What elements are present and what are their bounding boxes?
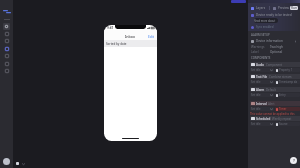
button[interactable]: Tool 7 bbox=[1, 67, 12, 74]
staticText: 9:41 bbox=[107, 26, 114, 30]
staticText: ? bbox=[293, 158, 295, 163]
staticText: Alarm bbox=[256, 88, 265, 92]
button[interactable]: Account bbox=[3, 158, 10, 165]
staticText: Default bbox=[266, 88, 276, 92]
button[interactable]: Set title bbox=[250, 122, 274, 126]
button[interactable]: Set title bbox=[250, 107, 274, 111]
staticText: Source bbox=[279, 122, 288, 126]
button[interactable]: Run bbox=[290, 6, 298, 10]
button[interactable]: Tool 3 bbox=[1, 37, 12, 44]
button[interactable]: Warnings bbox=[251, 45, 297, 49]
staticText: Set title bbox=[251, 93, 261, 97]
button[interactable]: Set title bbox=[250, 93, 274, 97]
staticText: Text File bbox=[256, 75, 268, 79]
staticText: Timer bbox=[279, 107, 287, 111]
button[interactable]: Help bbox=[290, 157, 297, 164]
staticText: Combine stream bbox=[269, 75, 292, 79]
button[interactable]: Layers bbox=[250, 6, 267, 10]
staticText: Warnings bbox=[251, 45, 265, 49]
staticText: Set title bbox=[251, 107, 261, 111]
staticText: Set title bbox=[251, 122, 261, 126]
button[interactable]: Tool 2 bbox=[1, 30, 12, 37]
staticText: Device ready to be tested bbox=[256, 13, 292, 17]
staticText: Two high suggested bbox=[270, 45, 297, 49]
staticText: Layers bbox=[256, 6, 266, 10]
staticText: Preview bbox=[278, 6, 289, 10]
staticText: COMPONENTS bbox=[251, 56, 271, 60]
staticText: This value cannot be applied to this com… bbox=[250, 112, 300, 116]
button[interactable]: Timestamp da bbox=[275, 80, 300, 84]
staticText: Device information bbox=[256, 39, 283, 43]
staticText: ALARM SETUP bbox=[251, 33, 270, 37]
button[interactable]: Set title bbox=[250, 80, 274, 84]
button[interactable]: Device information bbox=[251, 39, 297, 43]
button[interactable]: Set title bbox=[250, 68, 274, 72]
button[interactable]: Edit bbox=[148, 34, 154, 38]
button[interactable]: Property 1 bbox=[275, 68, 300, 72]
staticText: Interval bbox=[256, 102, 267, 106]
staticText: Component bbox=[266, 63, 283, 67]
staticText: Property 1 bbox=[279, 68, 293, 72]
button[interactable]: Text File bbox=[251, 74, 300, 79]
button[interactable]: Tool 1 bbox=[1, 23, 12, 30]
button[interactable]: Read more about this bbox=[254, 18, 278, 23]
staticText: Set title bbox=[251, 80, 261, 84]
button[interactable]: Zoom controls bbox=[16, 161, 25, 166]
button[interactable]: Alarm bbox=[251, 87, 300, 92]
button[interactable]: Preview bbox=[272, 6, 290, 10]
button[interactable]: Tool 6 bbox=[1, 60, 12, 67]
button[interactable]: Interval bbox=[251, 101, 300, 106]
button[interactable]: Tool 4 bbox=[1, 45, 12, 52]
button[interactable]: Tool 5 bbox=[1, 52, 12, 59]
button[interactable]: Entry bbox=[275, 93, 300, 97]
button[interactable]: Timer bbox=[275, 107, 300, 111]
staticText: Alert bbox=[268, 102, 275, 106]
staticText: Timestamp da bbox=[279, 80, 298, 84]
staticText: Audio bbox=[256, 63, 265, 67]
button[interactable]: Label bbox=[251, 50, 297, 54]
staticText: Scheduled bbox=[256, 117, 271, 121]
staticText: Inbox bbox=[125, 34, 136, 39]
staticText: Label bbox=[251, 50, 259, 54]
button[interactable]: Audio bbox=[251, 62, 300, 67]
button[interactable]: Scheduled bbox=[251, 116, 300, 121]
button[interactable]: App logo bbox=[1, 6, 12, 17]
staticText: Sync enabled bbox=[256, 25, 274, 29]
staticText: Run bbox=[291, 6, 298, 10]
staticText: Optional bbox=[270, 50, 283, 54]
staticText: Read more about this bbox=[254, 19, 278, 23]
button[interactable]: Selection badge bbox=[231, 0, 246, 3]
staticText: Set title bbox=[251, 68, 261, 72]
staticText: Entry bbox=[279, 93, 286, 97]
staticText: Sorted by date bbox=[106, 42, 127, 46]
button[interactable]: Source bbox=[275, 122, 300, 126]
staticText: Weekly repeat bbox=[272, 117, 292, 121]
